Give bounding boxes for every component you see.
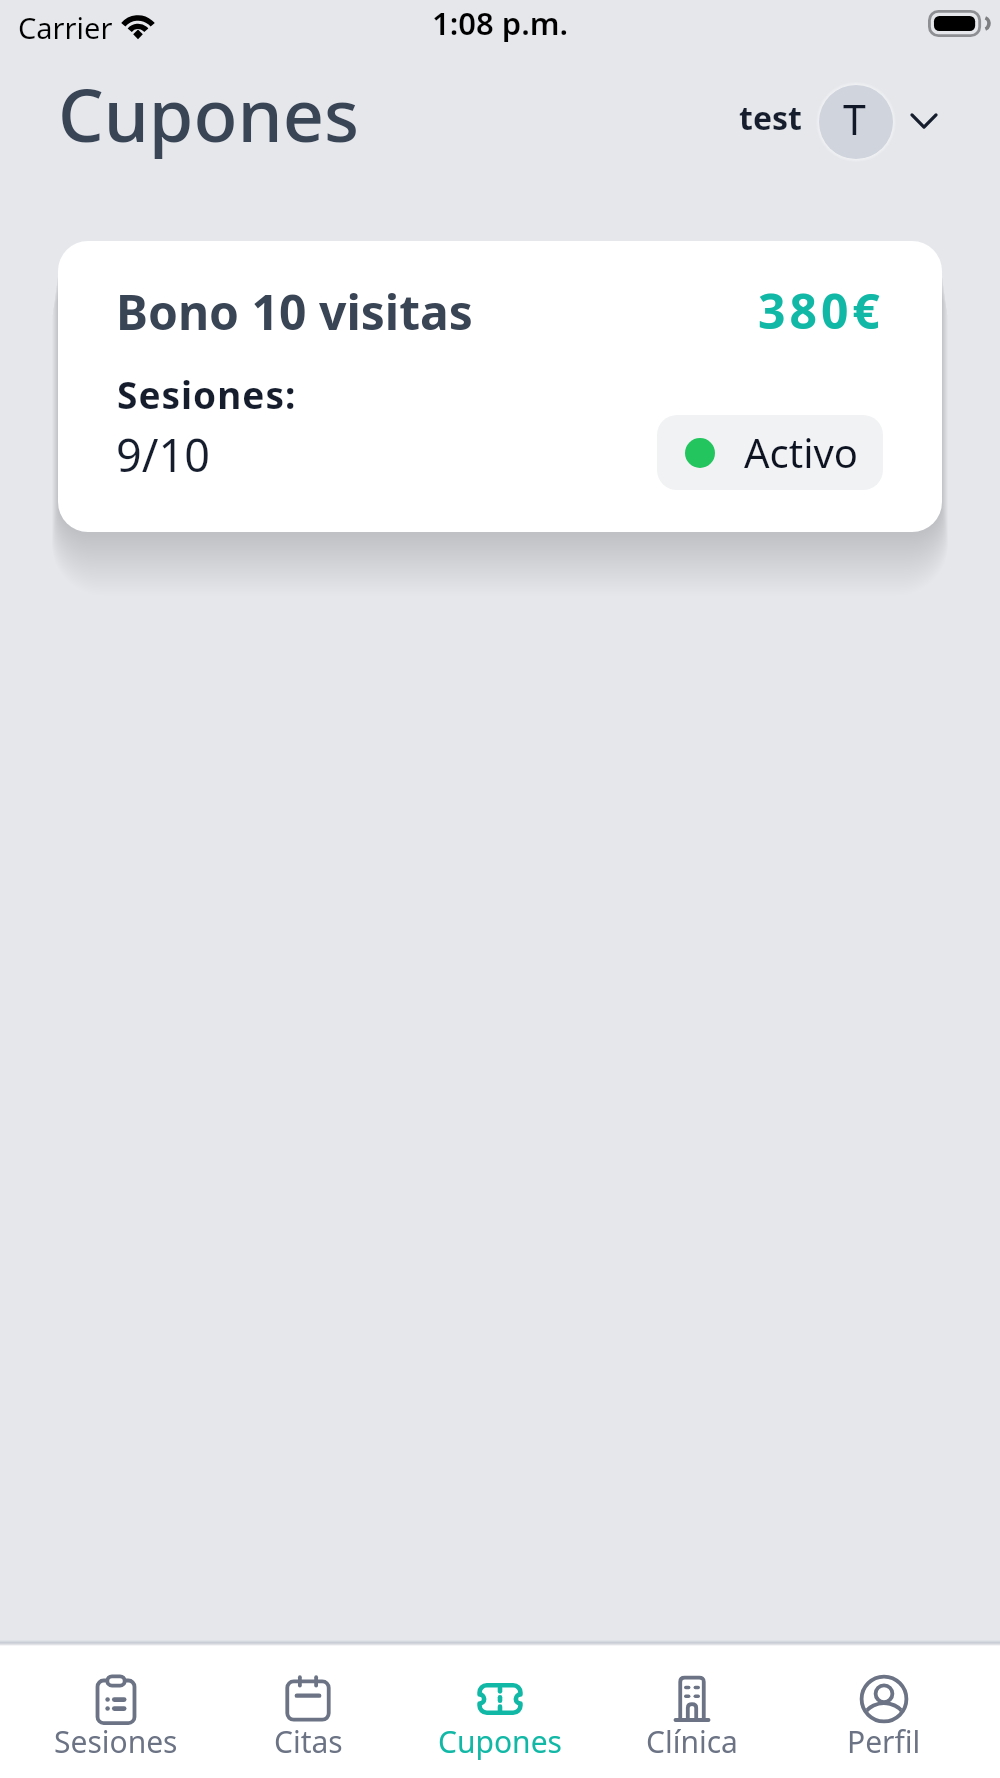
staticText: Cupones: [58, 65, 359, 163]
staticText: Clínica: [646, 1721, 738, 1762]
button[interactable]: Perfil: [788, 1646, 980, 1778]
button[interactable]: Activo: [657, 415, 883, 490]
staticText: Cupones: [438, 1721, 562, 1762]
button[interactable]: Bono 10 visitas: [58, 241, 942, 532]
staticText: 380€: [758, 278, 884, 343]
staticText: Activo: [744, 425, 859, 479]
button[interactable]: test: [735, 82, 938, 162]
staticText: 1:08 p.m.: [432, 2, 569, 44]
button[interactable]: Sesiones: [20, 1646, 212, 1778]
button[interactable]: Citas: [212, 1646, 404, 1778]
staticText: Citas: [274, 1721, 343, 1762]
button[interactable]: Cupones: [404, 1646, 596, 1778]
other: Expandir cuenta: [910, 107, 938, 135]
staticText: 9/10: [116, 424, 210, 485]
staticText: Sesiones:: [117, 369, 297, 419]
staticText: Perfil: [847, 1721, 921, 1762]
staticText: Bono 10 visitas: [116, 279, 473, 344]
button[interactable]: Clínica: [596, 1646, 788, 1778]
staticText: Carrier: [18, 8, 113, 47]
staticText: test: [739, 96, 802, 140]
staticText: Sesiones: [54, 1721, 178, 1762]
staticText: T: [843, 91, 866, 147]
